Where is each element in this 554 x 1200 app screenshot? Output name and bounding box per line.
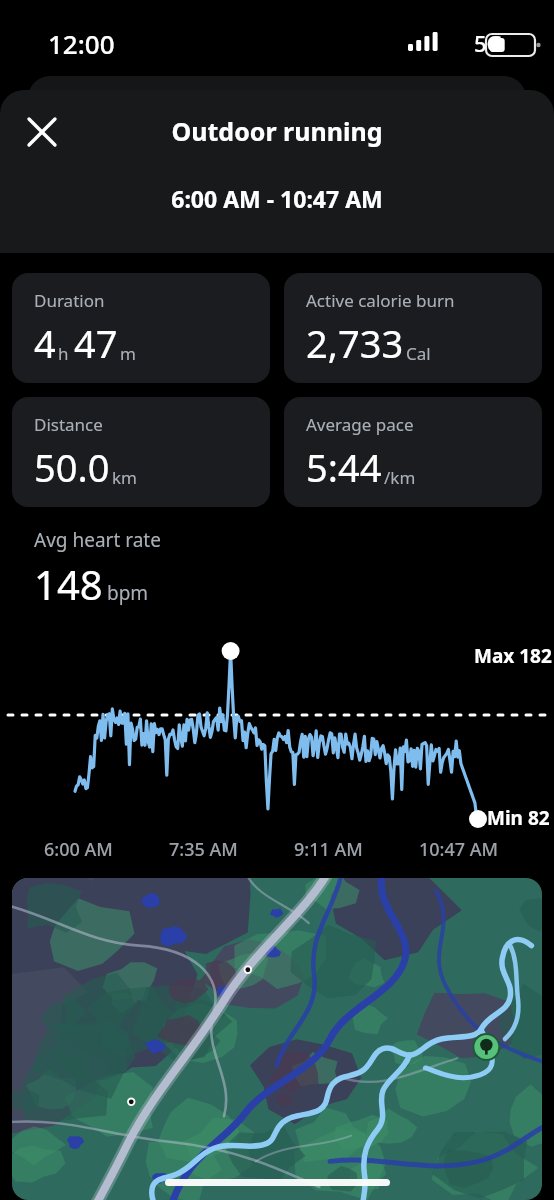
button[interactable]: Average pace xyxy=(284,397,542,507)
staticText: 6:00 AM xyxy=(44,837,169,862)
button[interactable]: Route map xyxy=(12,878,542,1200)
button[interactable]: Active calorie burn xyxy=(284,273,542,383)
staticText: Max 182 xyxy=(474,643,552,669)
staticText: km xyxy=(112,466,137,489)
staticText: bpm xyxy=(107,580,149,606)
staticText: Average pace xyxy=(306,413,414,436)
staticText: Duration xyxy=(34,289,105,312)
staticText: h xyxy=(58,342,69,365)
staticText: 4 xyxy=(34,317,56,369)
button[interactable]: Distance xyxy=(12,397,270,507)
staticText: 5G xyxy=(474,28,503,58)
staticText: 10:47 AM xyxy=(419,837,544,862)
staticText: 7:35 AM xyxy=(169,837,294,862)
button[interactable]: Duration xyxy=(12,273,270,383)
staticText: /km xyxy=(384,466,416,489)
staticText: 5:44 xyxy=(306,441,382,493)
staticText: 9:11 AM xyxy=(294,837,419,862)
staticText: Outdoor running xyxy=(0,114,554,148)
staticText: Min 82 xyxy=(487,805,550,831)
staticText: Cal xyxy=(406,342,431,365)
button[interactable]: Close xyxy=(14,104,70,160)
staticText: Active calorie burn xyxy=(306,289,455,312)
staticText: m xyxy=(120,342,136,365)
staticText: 6:00 AM - 10:47 AM xyxy=(0,183,554,214)
staticText: 47 xyxy=(74,317,118,369)
staticText: 148 xyxy=(34,557,103,611)
staticText: Distance xyxy=(34,413,103,436)
staticText: 2,733 xyxy=(306,317,404,369)
staticText: Avg heart rate xyxy=(34,527,161,553)
staticText: 12:00 xyxy=(48,26,115,61)
staticText: 50.0 xyxy=(34,441,110,493)
